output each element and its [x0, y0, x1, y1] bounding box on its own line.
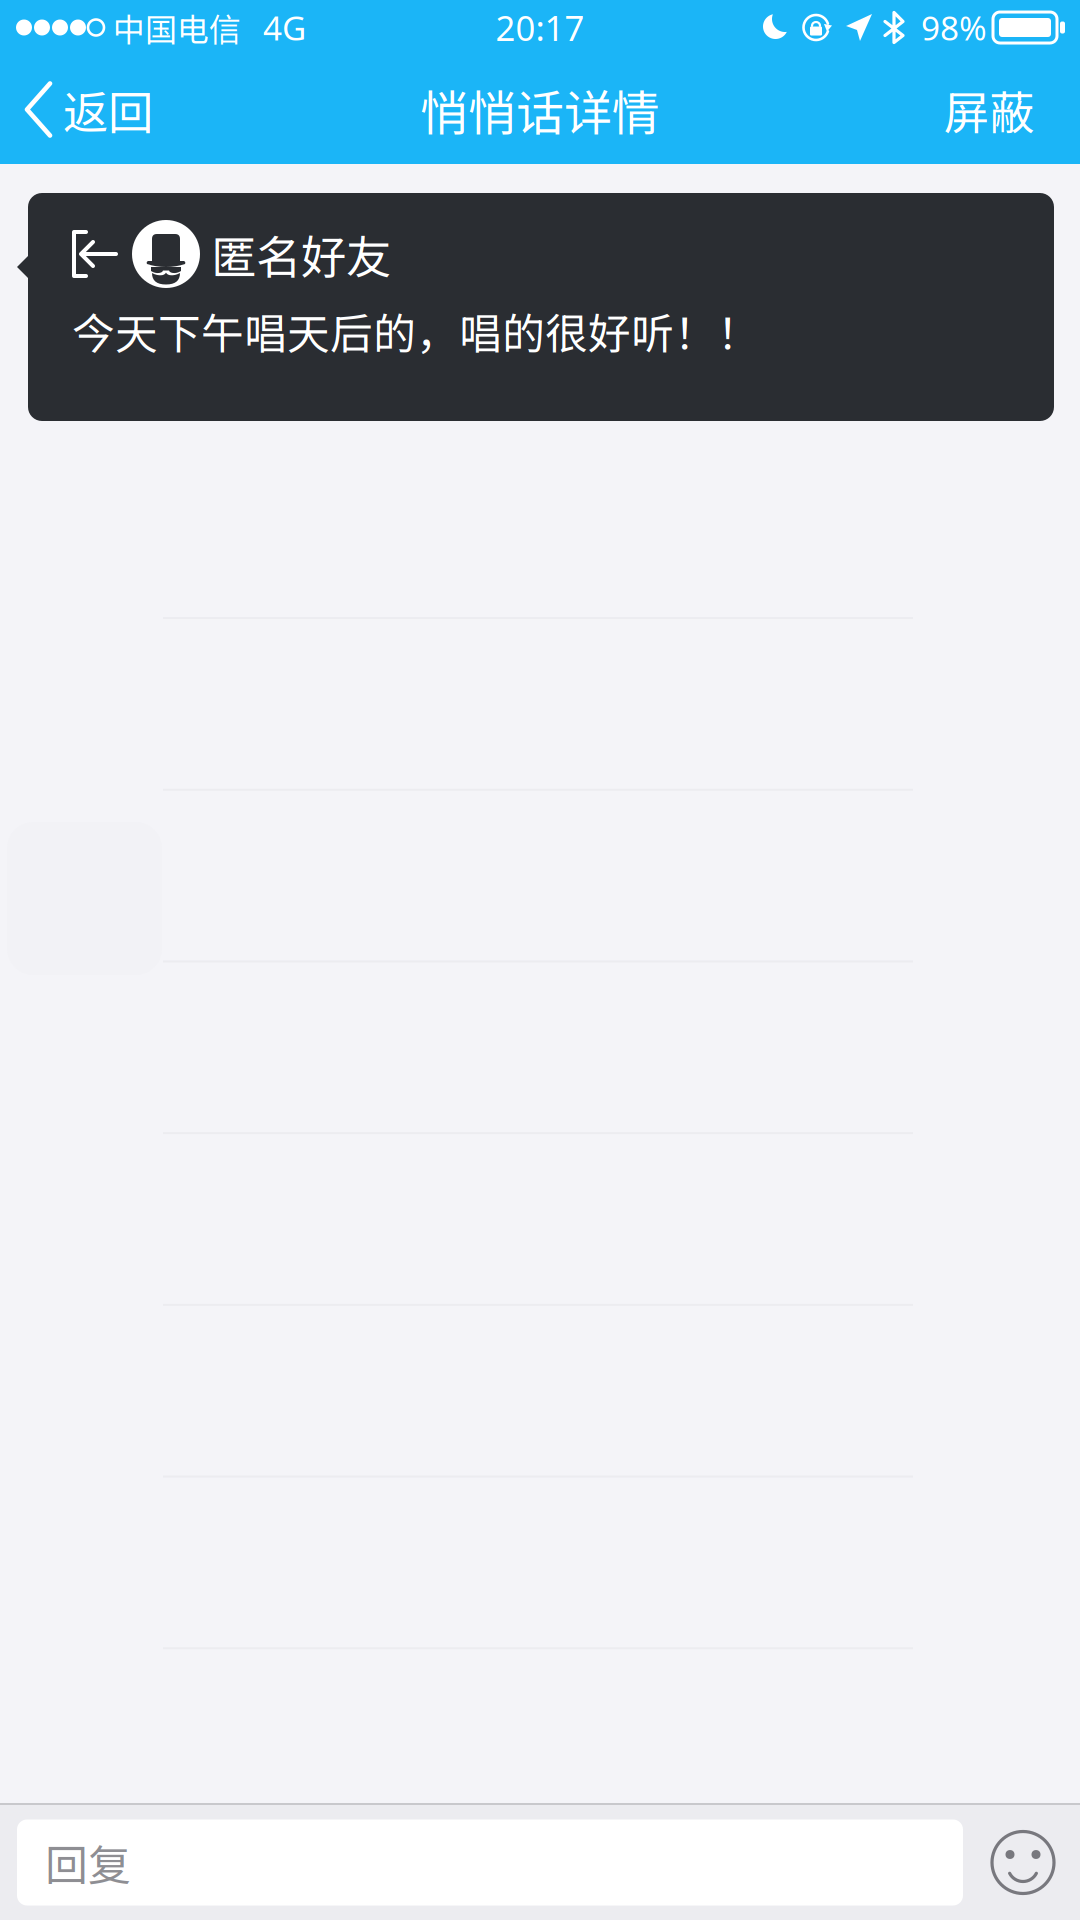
staticText: 中国电信 [113, 4, 241, 51]
staticText: 回复 [45, 1832, 131, 1893]
staticText: 匿名好友 [211, 221, 391, 287]
button[interactable]: 返回 [0, 55, 177, 164]
staticText: 4G [263, 5, 306, 50]
staticText: 屏蔽 [944, 77, 1034, 142]
staticText: 返回 [63, 77, 153, 142]
staticText: 今天下午唱天后的，唱的很好听！！ [72, 300, 760, 362]
staticText: 20:17 [495, 4, 584, 51]
staticText: 98% [921, 5, 987, 50]
staticText: 悄悄话详情 [420, 75, 660, 144]
button[interactable]: Emoji [979, 1818, 1067, 1906]
button[interactable]: 屏蔽 [920, 55, 1080, 164]
button[interactable]: 回复 [17, 1819, 963, 1905]
